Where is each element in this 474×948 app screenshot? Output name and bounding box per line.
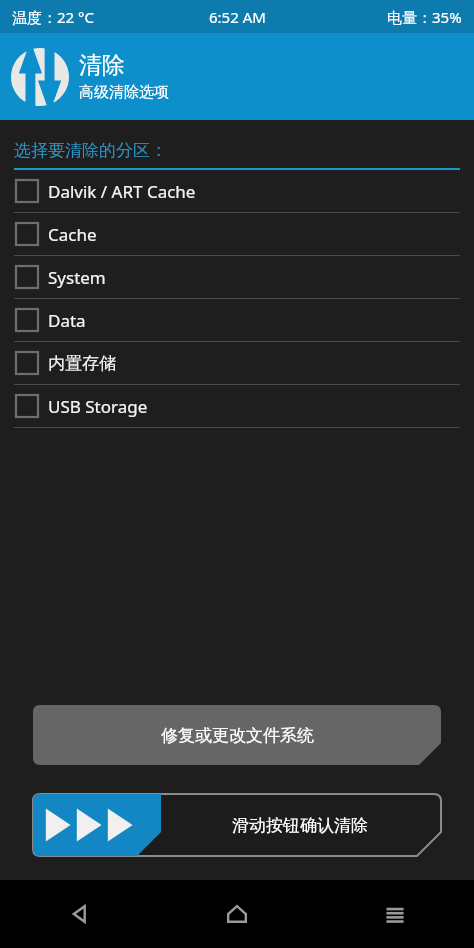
- staticText: 高级清除选项: [79, 83, 169, 102]
- staticText: Data: [48, 309, 86, 332]
- staticText: 选择要清除的分区：: [14, 140, 167, 161]
- button[interactable]: System: [0, 256, 474, 298]
- button[interactable]: Data: [0, 299, 474, 341]
- button[interactable]: 内置存储: [0, 342, 474, 384]
- staticText: Cache: [48, 223, 97, 246]
- staticText: 修复或更改文件系统: [161, 725, 314, 746]
- staticText: 电量：35%: [387, 7, 462, 27]
- button[interactable]: 修复或更改文件系统: [33, 705, 441, 765]
- staticText: 清除: [79, 51, 125, 80]
- button[interactable]: Home: [158, 880, 316, 948]
- button[interactable]: Dalvik / ART Cache: [0, 170, 474, 212]
- staticText: Dalvik / ART Cache: [48, 180, 196, 203]
- button[interactable]: Back: [0, 880, 158, 948]
- button[interactable]: USB Storage: [0, 385, 474, 427]
- button[interactable]: Menu: [316, 880, 474, 948]
- staticText: 6:52 AM: [209, 7, 266, 27]
- staticText: 内置存储: [48, 353, 116, 374]
- staticText: 滑动按钮确认清除: [232, 815, 368, 836]
- button[interactable]: 滑动按钮确认清除: [33, 794, 441, 856]
- staticText: System: [48, 266, 106, 289]
- staticText: USB Storage: [48, 395, 148, 418]
- button[interactable]: Cache: [0, 213, 474, 255]
- staticText: 温度：22 °C: [12, 7, 94, 27]
